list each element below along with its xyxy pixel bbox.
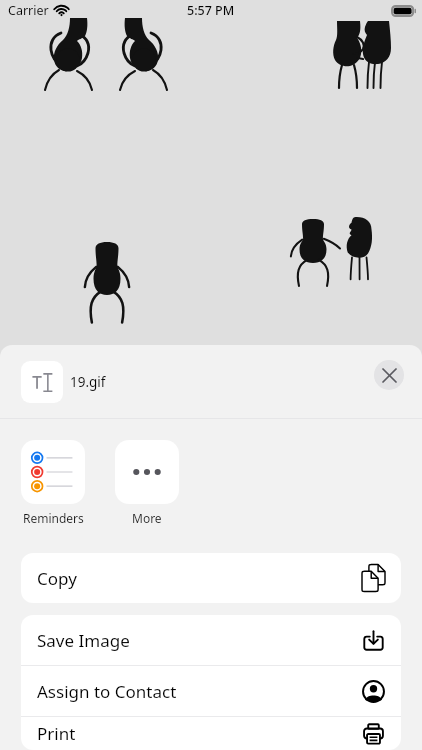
staticText: More	[132, 510, 162, 526]
staticText: Print	[37, 722, 76, 745]
button[interactable]: 19.gif	[21, 345, 374, 418]
button[interactable]: Copy	[21, 553, 401, 603]
staticText: Copy	[37, 567, 77, 590]
button[interactable]: Print	[21, 717, 401, 750]
staticText: Save Image	[37, 629, 130, 652]
button[interactable]: Reminders	[21, 440, 85, 526]
staticText: 5:57 PM	[187, 2, 235, 19]
button[interactable]: Assign to Contact	[21, 666, 401, 716]
button[interactable]: Close	[374, 360, 404, 390]
button[interactable]: Save Image	[21, 615, 401, 665]
staticText: 19.gif	[70, 373, 106, 391]
button[interactable]: More	[115, 440, 179, 526]
staticText: Carrier	[8, 2, 49, 19]
staticText: Reminders	[23, 510, 84, 526]
staticText: Assign to Contact	[37, 680, 177, 703]
